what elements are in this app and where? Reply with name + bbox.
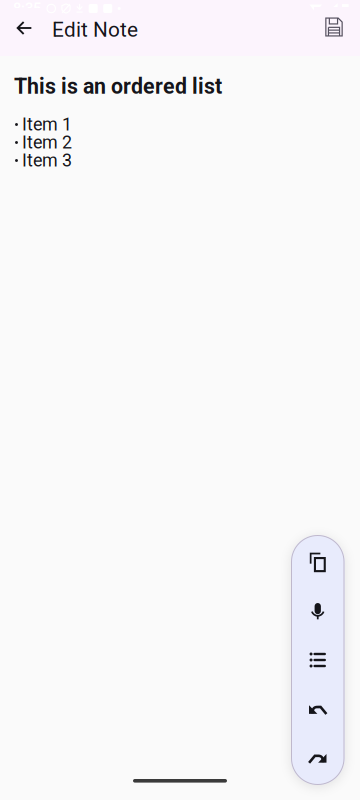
button[interactable]: Save xyxy=(314,7,354,47)
staticText: Edit Note xyxy=(52,17,138,42)
button[interactable]: Copy xyxy=(291,538,344,587)
staticText: This is an ordered list xyxy=(14,74,222,99)
button[interactable]: Dictate xyxy=(291,587,344,636)
staticText: Item 2 xyxy=(22,132,72,153)
button[interactable]: Redo xyxy=(291,733,344,782)
staticText: 8:35 xyxy=(13,0,41,17)
staticText: Item 3 xyxy=(22,150,72,171)
button[interactable]: Back xyxy=(4,8,44,48)
button[interactable]: Bulleted list xyxy=(291,636,344,684)
button[interactable]: Undo xyxy=(291,684,344,733)
staticText: Item 1 xyxy=(22,114,72,135)
